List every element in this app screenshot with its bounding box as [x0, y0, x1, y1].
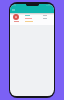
button[interactable]: [10, 13, 54, 25]
